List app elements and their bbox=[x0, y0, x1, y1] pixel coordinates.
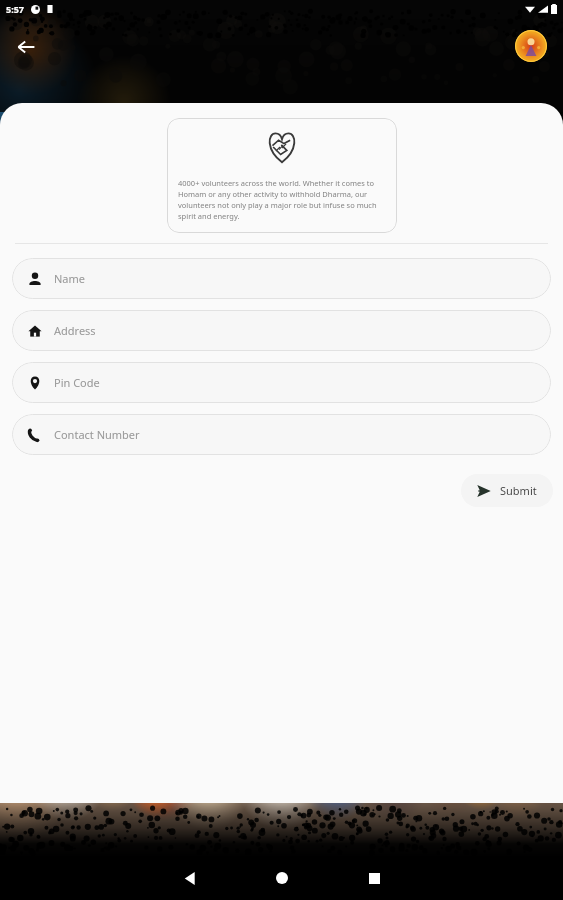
button[interactable]: Recent apps bbox=[328, 856, 420, 900]
staticText: Name bbox=[54, 271, 86, 286]
button[interactable]: Home bbox=[236, 856, 328, 900]
button[interactable]: Back bbox=[144, 856, 236, 900]
button[interactable]: Back bbox=[5, 26, 47, 68]
staticText: 5:57 bbox=[6, 3, 24, 15]
staticText: 4000+ volunteers across the world. Wheth… bbox=[178, 178, 386, 221]
button[interactable]: Pin Code bbox=[12, 362, 551, 403]
staticText: Address bbox=[54, 323, 96, 338]
button[interactable]: Contact Number bbox=[12, 414, 551, 455]
button[interactable]: Name bbox=[12, 258, 551, 299]
button[interactable]: Submit bbox=[461, 474, 553, 507]
staticText: Pin Code bbox=[54, 375, 100, 390]
button[interactable]: Profile bbox=[515, 30, 547, 62]
button[interactable]: Address bbox=[12, 310, 551, 351]
staticText: Submit bbox=[500, 483, 537, 498]
staticText: Contact Number bbox=[54, 427, 140, 442]
